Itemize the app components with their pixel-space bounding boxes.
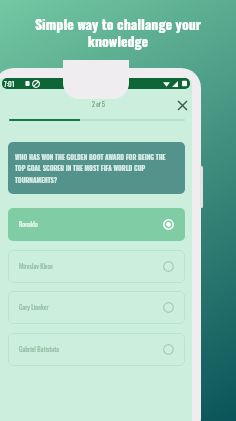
button[interactable]: Ronaldo	[8, 208, 185, 241]
button[interactable]: Gabriel Batistuta	[8, 333, 185, 366]
staticText: WHO HAS WON THE GOLDEN BOOT AWARD FOR BE…	[15, 152, 166, 185]
staticText: Gabriel Batistuta	[19, 344, 59, 354]
button[interactable]: Miroslav Klose	[8, 250, 185, 283]
button[interactable]: Gary Lineker	[8, 291, 185, 324]
staticText: Gary Lineker	[19, 302, 49, 312]
staticText: Simple way to challange your knowledge	[28, 13, 208, 51]
staticText: 2 of 5	[92, 100, 105, 109]
staticText: Miroslav Klose	[19, 261, 53, 271]
staticText: Ronaldo	[19, 219, 38, 229]
button[interactable]: Close	[174, 97, 191, 114]
staticText: 7:01	[4, 79, 15, 89]
